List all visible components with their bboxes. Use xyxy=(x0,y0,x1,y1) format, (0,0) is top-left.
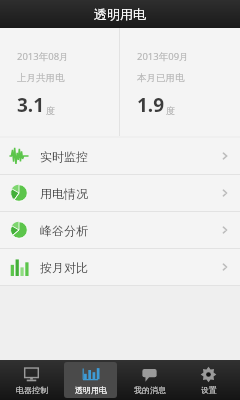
staticText: 本月已用电 xyxy=(137,72,185,84)
button[interactable]: 2013年08月 xyxy=(0,28,119,136)
staticText: 2013年09月 xyxy=(137,50,189,63)
button[interactable]: 实时监控 xyxy=(0,138,240,174)
button[interactable]: 峰谷分析 xyxy=(0,212,240,248)
staticText: 峰谷分析 xyxy=(40,223,220,238)
staticText: 实时监控 xyxy=(40,149,220,164)
staticText: 3.1 xyxy=(17,92,45,118)
staticText: 1.9 xyxy=(137,92,165,118)
staticText: 透明用电 xyxy=(75,385,107,395)
staticText: 电器控制 xyxy=(16,385,48,395)
button[interactable]: 设置 xyxy=(182,362,235,398)
button[interactable]: 用电情况 xyxy=(0,175,240,211)
staticText: 用电情况 xyxy=(40,186,220,201)
staticText: 度 xyxy=(46,105,55,116)
staticText: 设置 xyxy=(201,385,217,395)
staticText: 按月对比 xyxy=(40,260,220,275)
staticText: 2013年08月 xyxy=(17,50,69,63)
button[interactable]: 按月对比 xyxy=(0,249,240,285)
button[interactable]: 2013年09月 xyxy=(120,28,240,136)
button[interactable]: 电器控制 xyxy=(5,362,58,398)
staticText: 上月共用电 xyxy=(17,72,65,84)
staticText: 透明用电 xyxy=(94,6,146,22)
staticText: 我的消息 xyxy=(134,385,166,395)
button[interactable]: 透明用电 xyxy=(64,362,117,398)
staticText: 度 xyxy=(166,105,175,116)
button[interactable]: 我的消息 xyxy=(123,362,176,398)
